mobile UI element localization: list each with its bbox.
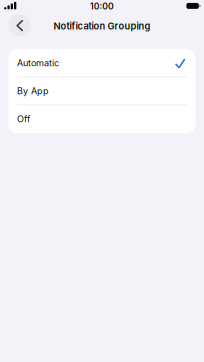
staticText: Notification Grouping — [53, 20, 150, 32]
staticText: Off — [17, 113, 30, 124]
button[interactable]: By App — [8, 77, 195, 105]
button[interactable]: Automatic — [8, 49, 195, 77]
staticText: By App — [17, 85, 49, 96]
button[interactable]: Off — [8, 105, 195, 133]
staticText: Automatic — [17, 57, 59, 68]
button[interactable]: Back — [9, 15, 31, 37]
staticText: 10:00 — [90, 1, 114, 12]
